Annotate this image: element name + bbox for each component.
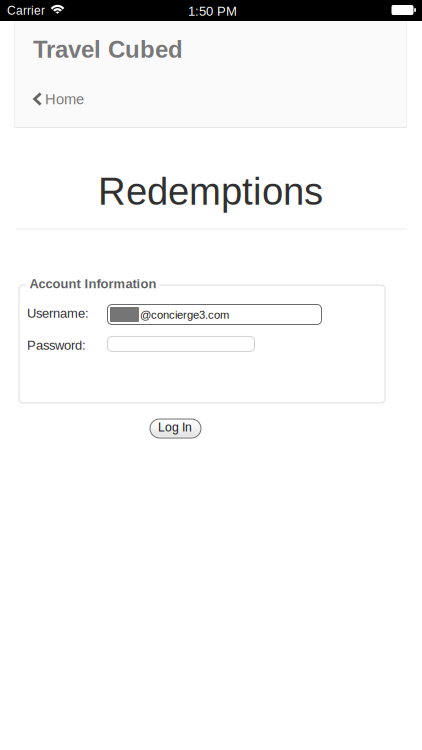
staticText: Username: bbox=[27, 306, 89, 320]
button[interactable]: Home bbox=[28, 87, 104, 115]
staticText: Travel Cubed bbox=[33, 36, 183, 63]
staticText: Redemptions bbox=[98, 170, 323, 213]
staticText: Carrier bbox=[7, 4, 45, 17]
staticText: 1:50 PM bbox=[188, 4, 237, 19]
staticText: Log In bbox=[158, 420, 192, 434]
staticText: Account Information bbox=[29, 276, 156, 291]
button[interactable]: Log In bbox=[150, 419, 201, 438]
staticText: Password: bbox=[27, 338, 86, 352]
staticText: @concierge3.com bbox=[140, 308, 229, 321]
staticText: Home bbox=[45, 91, 84, 107]
